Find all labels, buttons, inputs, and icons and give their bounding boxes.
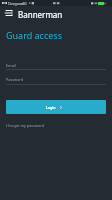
button[interactable]: Login [6,100,106,114]
staticText: 4G [22,1,27,6]
button[interactable]: I forgot my password [6,123,45,128]
staticText: Password [6,77,24,82]
staticText: Bannerman [18,9,63,20]
staticText: Login [46,105,56,110]
other: Bannerman logo [4,10,12,16]
button[interactable]: Password [0,74,112,85]
button[interactable]: Email [0,60,112,70]
staticText: Guard access [6,29,62,41]
staticText: Dovguan [8,1,24,6]
staticText: Email [6,63,16,68]
